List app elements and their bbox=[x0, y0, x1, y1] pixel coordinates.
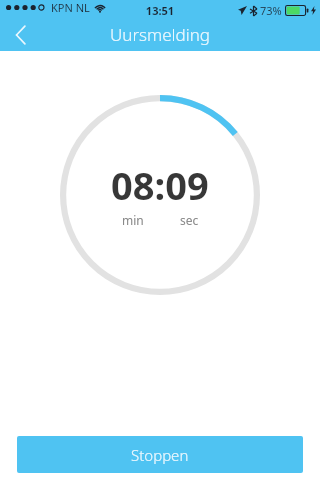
staticText: min bbox=[122, 212, 168, 228]
staticText: Uursmelding bbox=[0, 23, 320, 46]
button[interactable]: Back bbox=[4, 18, 38, 52]
staticText: 08:09 bbox=[111, 159, 209, 211]
staticText: 73% bbox=[260, 3, 282, 18]
staticText: KPN NL bbox=[51, 0, 90, 15]
staticText: 13:51 bbox=[0, 3, 320, 18]
staticText: sec bbox=[180, 212, 199, 228]
button[interactable]: Stoppen bbox=[17, 436, 303, 473]
staticText: Stoppen bbox=[131, 445, 189, 465]
